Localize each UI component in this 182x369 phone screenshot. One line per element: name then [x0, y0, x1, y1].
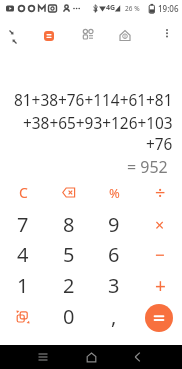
- button[interactable]: [125, 345, 149, 369]
- button[interactable]: −: [137, 239, 182, 270]
- button[interactable]: 1: [0, 270, 46, 301]
- button[interactable]: 9: [91, 209, 137, 240]
- button[interactable]: ×: [137, 209, 182, 240]
- staticText: 6: [108, 241, 120, 268]
- button[interactable]: [4, 26, 22, 44]
- staticText: 9: [108, 211, 120, 238]
- staticText: 5: [63, 241, 75, 268]
- button[interactable]: ÷: [137, 177, 182, 208]
- staticText: 7: [17, 211, 29, 238]
- staticText: 81+38+76+114+61+81: [14, 90, 173, 111]
- button[interactable]: 3: [91, 270, 137, 301]
- staticText: ×: [155, 214, 165, 236]
- button[interactable]: 6: [91, 239, 137, 270]
- staticText: 8: [63, 211, 75, 238]
- staticText: = 952: [127, 156, 168, 178]
- button[interactable]: [44, 31, 54, 41]
- staticText: ÷: [155, 180, 166, 205]
- staticText: +: [155, 273, 166, 299]
- button[interactable]: 0: [46, 301, 92, 332]
- button[interactable]: [118, 29, 132, 43]
- staticText: 0: [63, 303, 75, 330]
- button[interactable]: [46, 177, 92, 208]
- staticText: −: [155, 243, 165, 266]
- button[interactable]: [160, 26, 174, 42]
- staticText: 4: [17, 241, 29, 268]
- staticText: C: [19, 183, 28, 202]
- button[interactable]: 8: [46, 209, 92, 240]
- button[interactable]: [31, 345, 55, 369]
- button[interactable]: [145, 304, 173, 332]
- staticText: 4G: [106, 3, 116, 13]
- staticText: +76: [146, 134, 173, 155]
- button[interactable]: [0, 301, 46, 332]
- button[interactable]: ,: [91, 301, 137, 332]
- staticText: 1: [17, 272, 29, 299]
- button[interactable]: [81, 27, 95, 41]
- staticText: 2: [63, 272, 75, 299]
- staticText: %: [109, 184, 120, 202]
- staticText: 19:06: [158, 3, 179, 14]
- button[interactable]: 7: [0, 209, 46, 240]
- button[interactable]: 2: [46, 270, 92, 301]
- button[interactable]: %: [91, 177, 137, 208]
- staticText: ,: [111, 303, 117, 330]
- button[interactable]: [79, 345, 103, 369]
- staticText: +38+65+93+126+103: [23, 113, 173, 134]
- button[interactable]: 5: [46, 239, 92, 270]
- button[interactable]: 4: [0, 239, 46, 270]
- button[interactable]: C: [0, 177, 46, 208]
- staticText: 26 %: [125, 4, 140, 13]
- button[interactable]: +: [137, 270, 182, 301]
- staticText: 3: [108, 272, 120, 299]
